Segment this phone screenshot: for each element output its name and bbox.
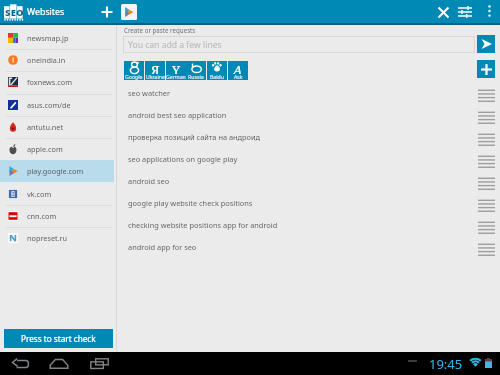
- staticText: Create or paste requests: [124, 26, 196, 34]
- staticText: Germany: [166, 73, 186, 80]
- staticText: 19:45: [429, 355, 463, 373]
- staticText: vk.com: [27, 189, 52, 199]
- button[interactable]: android app for seo: [117, 236, 500, 258]
- button[interactable]: Я: [145, 61, 165, 80]
- button[interactable]: google play website check positions: [117, 192, 500, 214]
- button[interactable]: Add website: [96, 1, 117, 22]
- staticText: Y: [172, 61, 181, 74]
- button[interactable]: Back: [8, 353, 32, 374]
- staticText: Russia: [188, 73, 204, 80]
- staticText: You can add a few lines: [128, 39, 222, 51]
- staticText: Я: [151, 61, 160, 74]
- staticText: checking website positions app for andro…: [128, 220, 278, 230]
- button[interactable]: Send: [477, 35, 495, 53]
- button[interactable]: android best seo application: [117, 104, 500, 126]
- button[interactable]: More options: [479, 1, 499, 21]
- staticText: newsmap.jp: [27, 33, 69, 43]
- staticText: SEO: [5, 6, 24, 19]
- staticText: google play website check positions: [128, 198, 253, 208]
- button[interactable]: Baidu: [207, 61, 227, 80]
- button[interactable]: cnn.com: [0, 205, 116, 227]
- button[interactable]: vk.com: [0, 183, 116, 205]
- button[interactable]: Recent apps: [87, 353, 111, 374]
- button[interactable]: asus.com/de: [0, 94, 116, 116]
- staticText: seo watcher: [128, 88, 171, 98]
- button[interactable]: seo applications on google play: [117, 148, 500, 170]
- staticText: antutu.net: [27, 122, 64, 132]
- staticText: android app for seo: [128, 242, 197, 252]
- button[interactable]: A: [228, 61, 248, 80]
- button[interactable]: newsmap.jp: [0, 27, 116, 49]
- staticText: nopreset.ru: [27, 233, 68, 243]
- button[interactable]: Russia: [186, 61, 206, 80]
- button[interactable]: seo watcher: [117, 82, 500, 104]
- button[interactable]: Settings: [454, 1, 476, 23]
- staticText: Press to start check: [21, 333, 96, 344]
- button[interactable]: checking website positions app for andro…: [117, 214, 500, 236]
- button[interactable]: play.google.com: [0, 160, 114, 182]
- staticText: seo applications on google play: [128, 154, 238, 164]
- button[interactable]: Home: [47, 353, 71, 374]
- staticText: Google: [125, 73, 143, 80]
- button[interactable]: проверка позиций сайта на андроид: [117, 126, 500, 148]
- staticText: Baidu: [210, 73, 225, 80]
- staticText: apple.com: [27, 144, 63, 154]
- staticText: cnn.com: [27, 211, 57, 221]
- button[interactable]: Google Play: [121, 4, 137, 20]
- button[interactable]: android seo: [117, 170, 500, 192]
- button[interactable]: antutu.net: [0, 116, 116, 138]
- staticText: проверка позиций сайта на андроид: [128, 132, 261, 142]
- staticText: foxnews.com: [27, 77, 73, 87]
- staticText: android seo: [128, 176, 170, 186]
- button[interactable]: apple.com: [0, 138, 116, 160]
- staticText: play.google.com: [27, 166, 84, 176]
- button[interactable]: foxnews.com: [0, 71, 116, 93]
- staticText: Websites: [27, 6, 65, 18]
- staticText: android best seo application: [128, 110, 227, 120]
- staticText: Ukraine: [146, 73, 165, 80]
- button[interactable]: oneindia.in: [0, 49, 116, 71]
- button[interactable]: Add request: [477, 60, 495, 78]
- staticText: asus.com/de: [27, 100, 71, 110]
- button[interactable]: Google: [124, 61, 144, 80]
- button[interactable]: Close: [432, 1, 454, 23]
- button[interactable]: You can add a few lines: [123, 36, 475, 53]
- staticText: oneindia.in: [27, 55, 66, 65]
- button[interactable]: nopreset.ru: [0, 227, 116, 249]
- button[interactable]: Y: [166, 61, 186, 80]
- button[interactable]: Press to start check: [4, 329, 113, 348]
- staticText: A: [233, 61, 243, 74]
- staticText: Ask: [234, 73, 243, 80]
